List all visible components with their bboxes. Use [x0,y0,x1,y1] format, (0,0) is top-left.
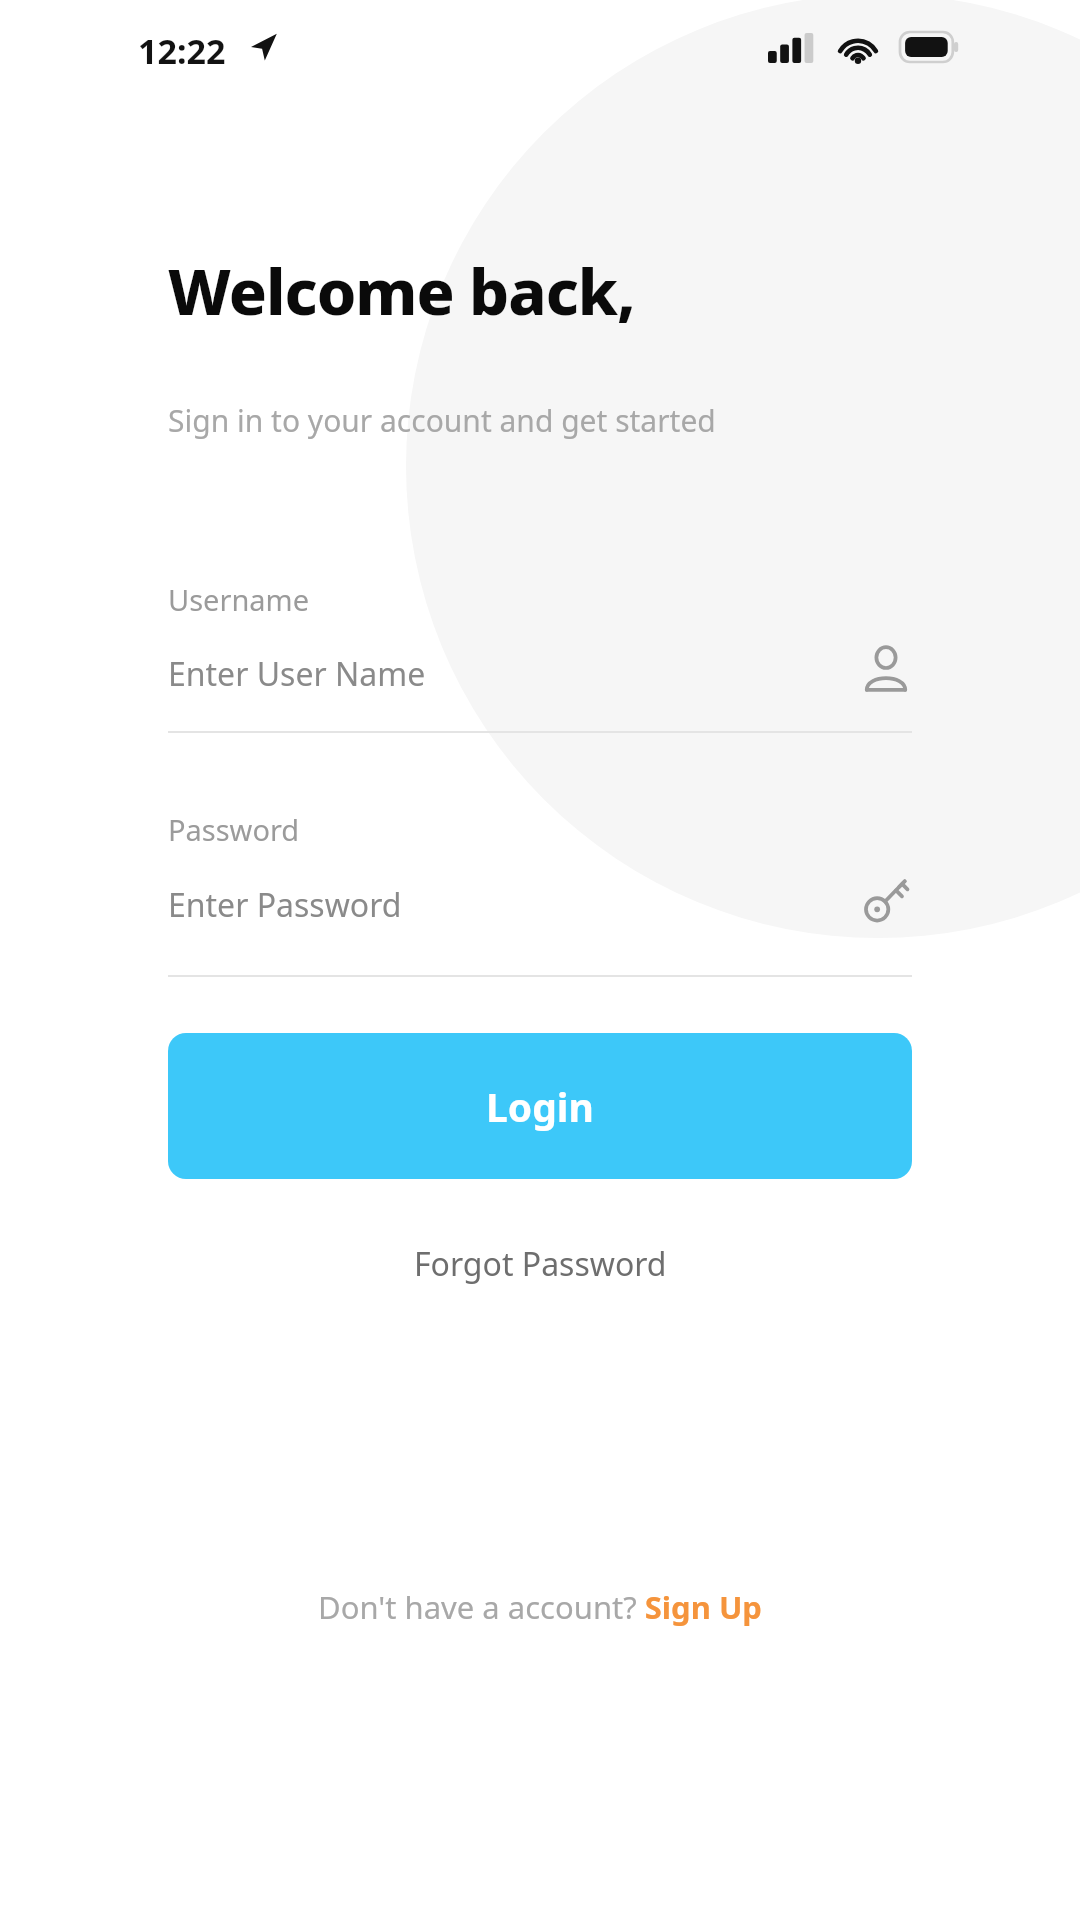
staticText: Don't have a account? Sign Up [318,1586,762,1628]
button[interactable]: Login [168,1033,912,1179]
other: Username [860,642,912,694]
staticText: Enter User Name [168,652,426,696]
button[interactable]: Username [168,580,912,735]
button[interactable]: Password [168,810,912,977]
button[interactable]: Forgot Password [390,1232,691,1296]
button[interactable]: Don't have a account? Sign Up [298,1578,782,1636]
staticText: Password [168,810,300,849]
staticText: Enter Password [168,883,402,927]
staticText: Login [486,1080,594,1133]
staticText: Username [168,580,310,619]
staticText: Sign in to your account and get started [168,400,716,441]
staticText: 12:22 [138,28,226,74]
other: Password [860,874,912,926]
staticText: Welcome back, [168,248,635,334]
staticText: Forgot Password [414,1242,667,1286]
